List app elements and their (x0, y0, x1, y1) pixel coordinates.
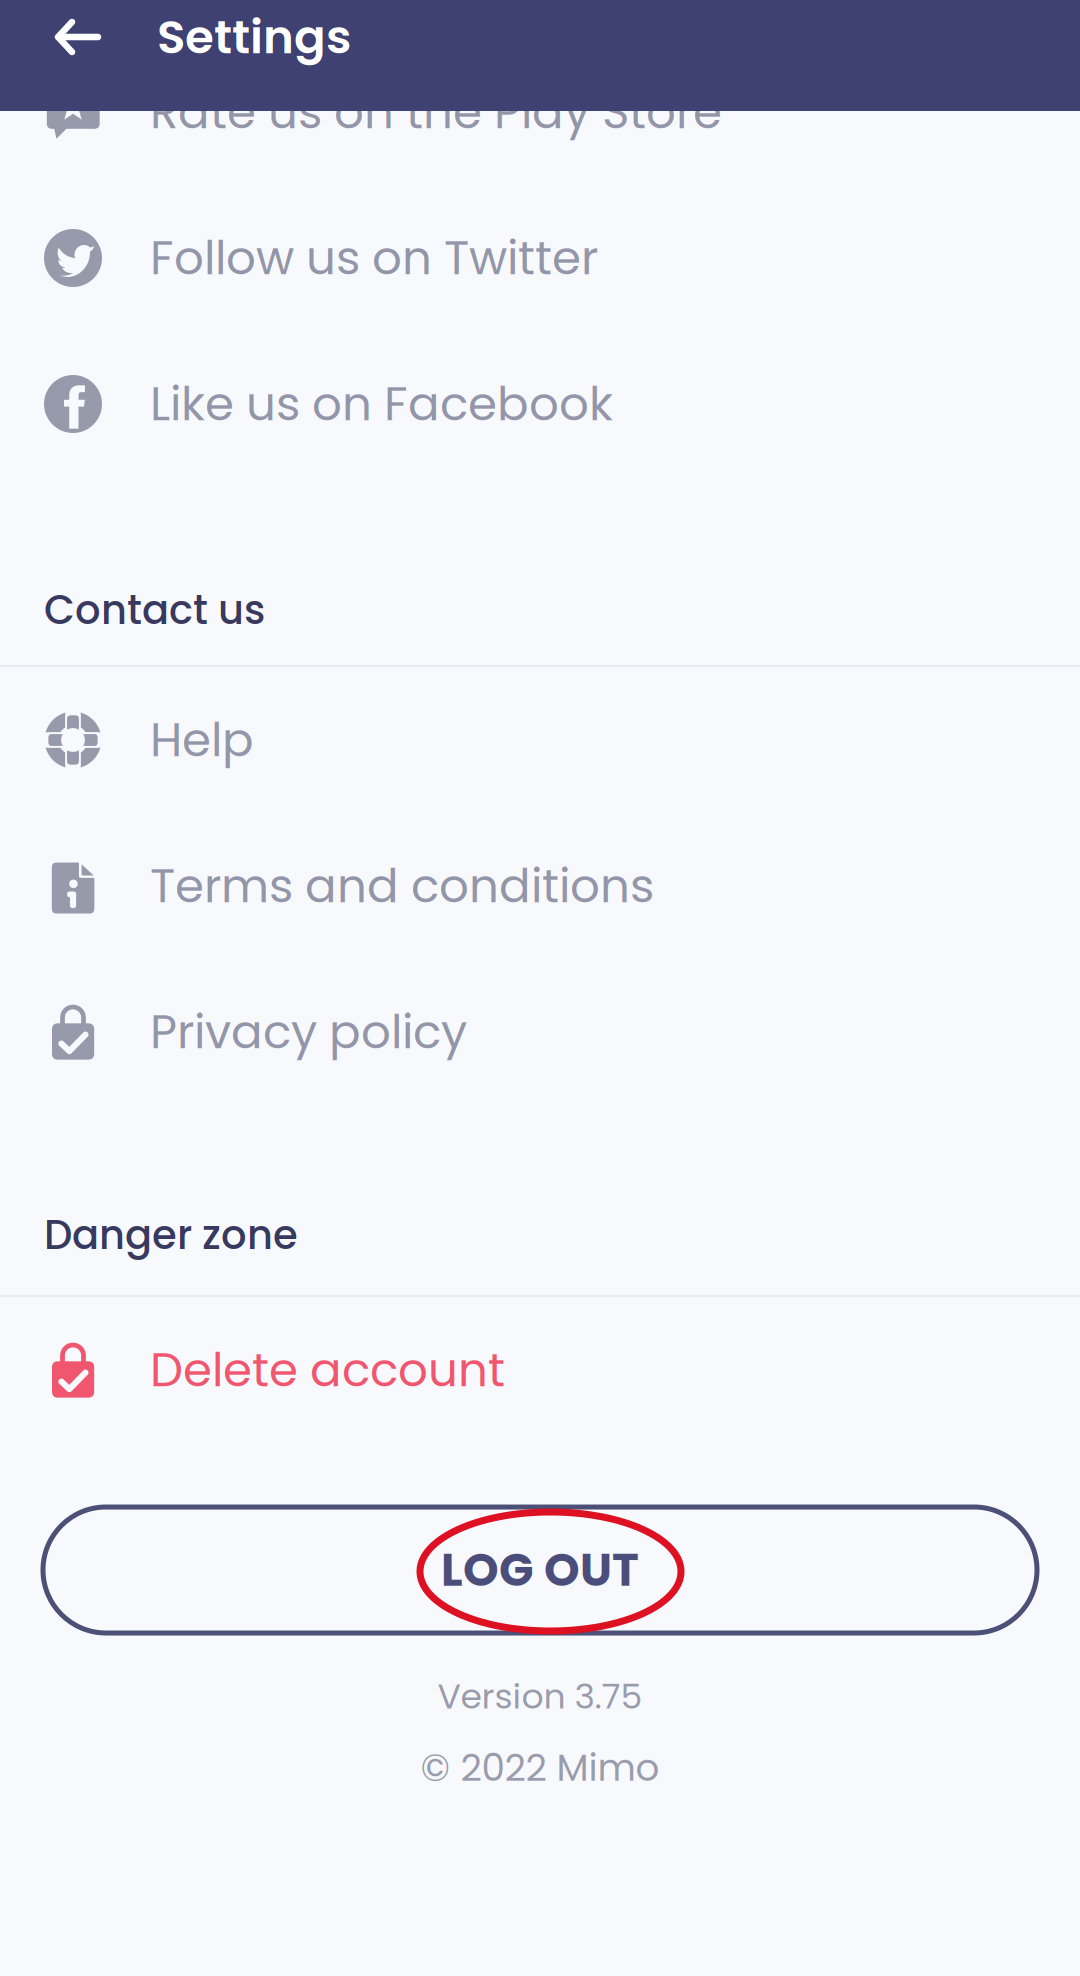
staticText: Danger zone (44, 1207, 298, 1263)
staticText: Like us on Facebook (150, 371, 613, 437)
staticText: Rate us on the Play Store (150, 79, 722, 145)
button[interactable]: LOG OUT (43, 1507, 1037, 1633)
staticText: Delete account (150, 1337, 505, 1403)
staticText: Version 3.75 (437, 1672, 642, 1720)
staticText: LOG OUT (441, 1538, 639, 1602)
button[interactable]: Privacy policy (0, 959, 1080, 1105)
button[interactable]: Follow us on Twitter (0, 185, 1080, 331)
staticText: Settings (157, 4, 351, 70)
staticText: Follow us on Twitter (150, 225, 598, 291)
button[interactable]: Terms and conditions (0, 813, 1080, 959)
staticText: Contact us (44, 582, 265, 638)
staticText: Privacy policy (150, 999, 467, 1065)
staticText: Help (150, 707, 254, 773)
button[interactable]: Back (54, 16, 102, 58)
button[interactable]: Rate us on the Play Store (0, 39, 1080, 185)
staticText: © 2022 Mimo (420, 1741, 659, 1794)
staticText: Terms and conditions (150, 853, 654, 919)
button[interactable]: Help (0, 667, 1080, 813)
button[interactable]: Delete account (0, 1297, 1080, 1443)
button[interactable]: Like us on Facebook (0, 331, 1080, 477)
